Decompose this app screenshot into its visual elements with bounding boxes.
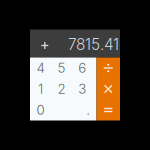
button[interactable]: 1 xyxy=(30,78,51,99)
staticText: 2 xyxy=(57,81,65,97)
button[interactable]: 2 xyxy=(51,78,72,99)
staticText: . xyxy=(86,102,90,118)
button[interactable]: 5 xyxy=(51,57,72,78)
button[interactable]: Equals xyxy=(96,99,120,120)
staticText: 1 xyxy=(38,81,43,97)
staticText: 3 xyxy=(78,81,86,97)
staticText: 0 xyxy=(36,102,44,118)
button[interactable]: Divide xyxy=(96,57,120,78)
button[interactable]: Add xyxy=(30,29,58,57)
button[interactable]: . xyxy=(80,99,96,120)
staticText: 6 xyxy=(78,60,86,76)
staticText: 4 xyxy=(36,60,44,76)
button[interactable]: 4 xyxy=(30,57,51,78)
button[interactable]: 0 xyxy=(30,99,51,120)
staticText: 5 xyxy=(57,60,65,76)
button[interactable]: 6 xyxy=(72,57,92,78)
staticText: 7815.41 xyxy=(68,35,119,54)
button[interactable]: 3 xyxy=(72,78,92,99)
button[interactable]: Multiply xyxy=(96,78,120,99)
